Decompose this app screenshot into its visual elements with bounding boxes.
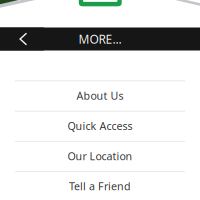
button[interactable]: Our Location	[0, 141, 200, 171]
button[interactable]: Tell a Friend	[0, 171, 200, 200]
button[interactable]: Back	[0, 27, 44, 50]
staticText: Our Location	[67, 149, 132, 163]
staticText: Tell a Friend	[69, 179, 131, 193]
button[interactable]: Quick Access	[0, 111, 200, 141]
staticText: Quick Access	[67, 119, 132, 133]
staticText: MORE...	[78, 31, 121, 47]
button[interactable]: About Us	[0, 80, 200, 111]
staticText: About Us	[76, 88, 123, 103]
